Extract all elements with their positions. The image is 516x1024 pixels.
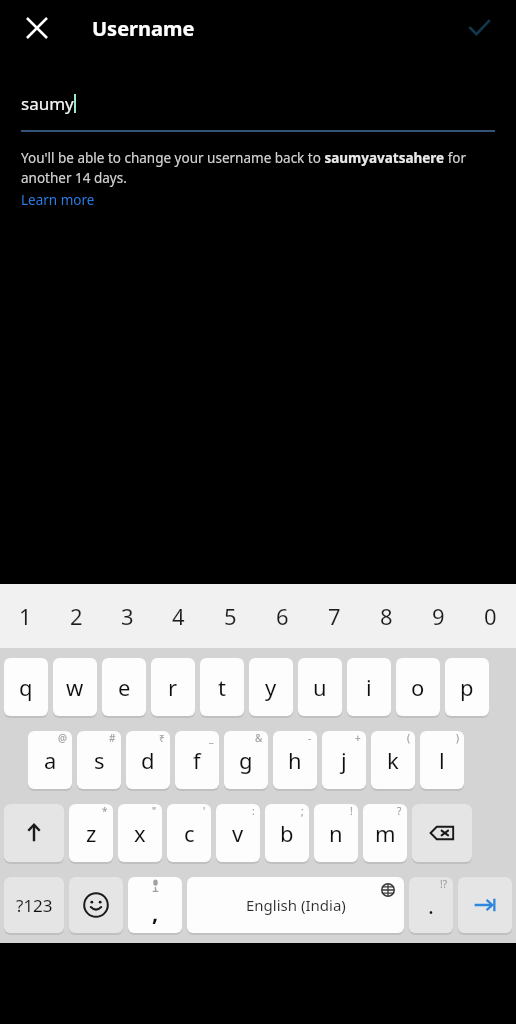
staticText: + xyxy=(355,731,361,745)
staticText: t xyxy=(218,672,226,702)
staticText: m xyxy=(375,818,396,848)
staticText: w xyxy=(66,672,84,702)
button[interactable]: ?123 xyxy=(4,877,64,935)
button[interactable]: + xyxy=(322,731,366,791)
button[interactable]: Emoji xyxy=(69,877,123,935)
button[interactable]: ! xyxy=(314,804,358,864)
button[interactable]: & xyxy=(224,731,268,791)
button[interactable]: r xyxy=(151,658,195,718)
staticText: p xyxy=(460,672,474,702)
button[interactable]: 8 xyxy=(360,584,412,648)
button[interactable]: w xyxy=(53,658,97,718)
staticText: ( xyxy=(407,731,410,745)
button[interactable]: 6 xyxy=(256,584,308,648)
button[interactable]: English (India) xyxy=(187,877,404,935)
button[interactable]: 9 xyxy=(412,584,464,648)
staticText: 5 xyxy=(224,601,237,631)
staticText: d xyxy=(141,745,155,775)
button[interactable]: 1 xyxy=(0,584,51,648)
staticText: # xyxy=(109,731,116,745)
button[interactable]: - xyxy=(273,731,317,791)
button[interactable]: ' xyxy=(167,804,211,864)
staticText: u xyxy=(313,672,327,702)
button[interactable]: # xyxy=(77,731,121,791)
button[interactable]: " xyxy=(118,804,162,864)
staticText: @ xyxy=(58,731,67,745)
button[interactable]: ) xyxy=(420,731,464,791)
staticText: & xyxy=(255,731,263,745)
staticText: r xyxy=(168,672,178,702)
staticText: You'll be able to change your username b… xyxy=(21,149,495,187)
staticText: !? xyxy=(440,877,448,891)
button[interactable]: 2 xyxy=(51,584,102,648)
staticText: y xyxy=(265,672,277,702)
staticText: : xyxy=(252,804,255,818)
staticText: ? xyxy=(397,804,402,818)
button[interactable]: , xyxy=(128,877,182,935)
staticText: Learn more xyxy=(21,191,95,209)
staticText: ) xyxy=(456,731,459,745)
staticText: o xyxy=(411,672,425,702)
staticText: b xyxy=(280,818,294,848)
button[interactable]: Close xyxy=(14,5,60,51)
staticText: ' xyxy=(203,804,206,818)
button[interactable]: p xyxy=(445,658,489,718)
button[interactable]: !? xyxy=(409,877,453,935)
staticText: " xyxy=(152,804,157,818)
staticText: saumy xyxy=(21,92,74,115)
button[interactable]: q xyxy=(4,658,48,718)
button[interactable]: Save xyxy=(456,5,502,51)
staticText: 2 xyxy=(70,601,83,631)
button[interactable]: Shift xyxy=(4,804,64,864)
button[interactable]: Backspace xyxy=(412,804,472,864)
button[interactable]: y xyxy=(249,658,293,718)
staticText: 7 xyxy=(328,601,341,631)
staticText: n xyxy=(329,818,343,848)
button[interactable]: _ xyxy=(175,731,219,791)
staticText: * xyxy=(102,804,108,818)
staticText: i xyxy=(366,672,372,702)
staticText: x xyxy=(134,818,146,848)
staticText: z xyxy=(86,818,97,848)
button[interactable]: o xyxy=(396,658,440,718)
button[interactable]: 0 xyxy=(464,584,516,648)
button[interactable]: * xyxy=(69,804,113,864)
staticText: l xyxy=(439,745,445,775)
staticText: 0 xyxy=(484,601,497,631)
staticText: English (India) xyxy=(246,895,346,915)
staticText: 4 xyxy=(172,601,185,631)
staticText: f xyxy=(193,745,201,775)
button[interactable]: 3 xyxy=(102,584,153,648)
button[interactable]: 7 xyxy=(308,584,360,648)
button[interactable]: u xyxy=(298,658,342,718)
staticText: Username xyxy=(92,15,195,42)
button[interactable]: i xyxy=(347,658,391,718)
staticText: . xyxy=(428,890,434,920)
button[interactable]: 5 xyxy=(204,584,256,648)
button[interactable]: ; xyxy=(265,804,309,864)
button[interactable]: Learn more xyxy=(21,191,95,209)
button[interactable]: e xyxy=(102,658,146,718)
staticText: k xyxy=(387,745,399,775)
staticText: h xyxy=(288,745,302,775)
button[interactable]: t xyxy=(200,658,244,718)
staticText: - xyxy=(308,731,312,745)
staticText: 6 xyxy=(276,601,289,631)
staticText: _ xyxy=(209,731,214,745)
button[interactable]: : xyxy=(216,804,260,864)
button[interactable]: Next xyxy=(458,877,512,935)
button[interactable]: @ xyxy=(28,731,72,791)
staticText: 1 xyxy=(19,601,32,631)
staticText: g xyxy=(239,745,253,775)
staticText: q xyxy=(19,672,33,702)
staticText: ! xyxy=(350,804,353,818)
staticText: ; xyxy=(301,804,304,818)
staticText: c xyxy=(184,818,195,848)
staticText: ?123 xyxy=(16,894,53,917)
staticText: v xyxy=(232,818,244,848)
button[interactable]: 4 xyxy=(153,584,204,648)
button[interactable]: ( xyxy=(371,731,415,791)
button[interactable]: ₹ xyxy=(126,731,170,791)
button[interactable]: ? xyxy=(363,804,407,864)
staticText: s xyxy=(94,745,105,775)
